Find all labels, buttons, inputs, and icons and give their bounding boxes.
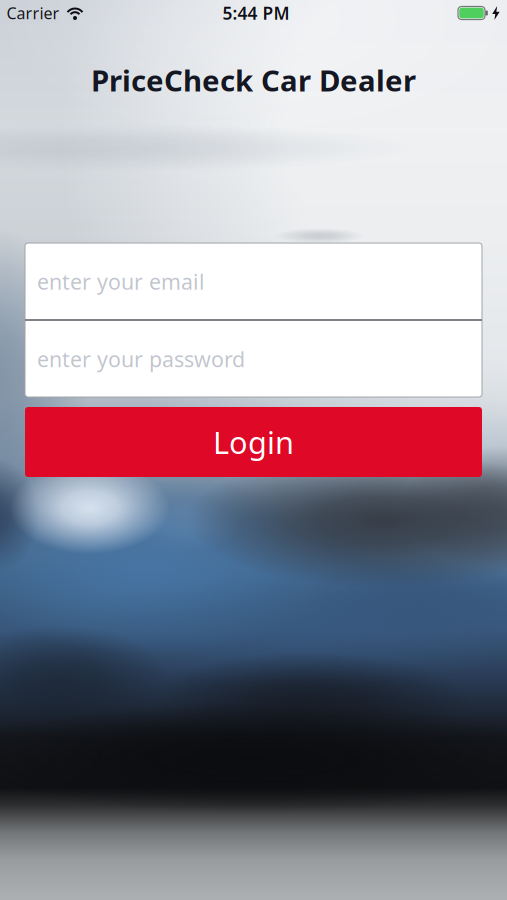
staticText: 5:44 PM	[222, 1, 289, 24]
staticText: enter your email	[37, 267, 205, 296]
staticText: PriceCheck Car Dealer	[91, 60, 416, 99]
button[interactable]: Login	[25, 407, 482, 477]
staticText: Login	[213, 422, 294, 462]
staticText: enter your password	[37, 345, 245, 373]
staticText: Carrier	[6, 2, 59, 24]
button[interactable]: enter your password	[25, 321, 482, 397]
button[interactable]: enter your email	[25, 243, 482, 319]
